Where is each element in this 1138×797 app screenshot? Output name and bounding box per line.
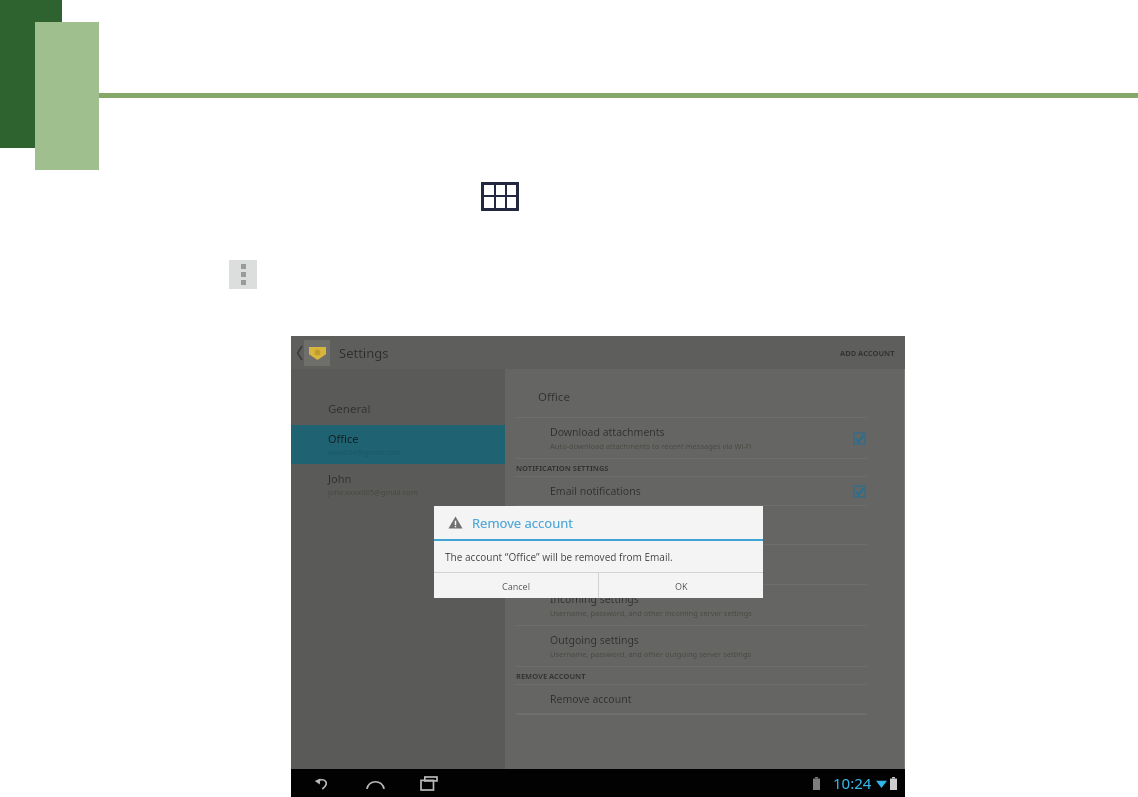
staticText: REMOVE ACCOUNT [516, 671, 586, 681]
button[interactable]: General [291, 396, 505, 425]
staticText: General [328, 401, 371, 417]
button[interactable]: Home [361, 774, 390, 793]
staticText: Office [328, 431, 359, 446]
button[interactable]: Recent apps [415, 773, 443, 794]
button[interactable]: Remove account [505, 685, 905, 713]
staticText: joha.xxxx005@gmail.com [328, 487, 418, 497]
staticText: Auto-download attachments to recent mess… [550, 441, 752, 451]
button[interactable]: Cancel [434, 573, 598, 598]
staticText: Remove account [550, 692, 632, 706]
button[interactable]: ADD ACCOUNT [830, 348, 905, 358]
staticText: Email notifications [550, 484, 641, 498]
staticText: Username, password, and other outgoing s… [550, 649, 752, 659]
staticText: 10:24 [833, 773, 872, 793]
staticText: Username, password, and other incoming s… [550, 608, 752, 618]
staticText: Download attachments [550, 425, 665, 439]
button[interactable]: OK [599, 573, 763, 598]
button[interactable]: Apps [481, 182, 519, 211]
staticText: OK [675, 580, 688, 592]
staticText: SERVER SETTINGS [516, 571, 581, 581]
button[interactable]: Office [291, 425, 505, 464]
staticText: Outgoing settings [550, 633, 639, 647]
staticText: The account “Office” will be removed fro… [445, 550, 673, 564]
button[interactable]: Outgoing settings [505, 626, 905, 666]
button[interactable]: Download attachments [505, 418, 905, 458]
staticText: Office [538, 389, 570, 405]
staticText: NOTIFICATION SETTINGS [516, 463, 609, 473]
staticText: Cancel [502, 580, 531, 592]
staticText: John [328, 471, 352, 486]
button[interactable]: Back [308, 773, 336, 794]
button[interactable]: Email notifications [505, 477, 905, 505]
button[interactable]: More options [229, 260, 257, 289]
staticText: Incoming settings [550, 592, 639, 606]
button[interactable]: John [291, 464, 505, 504]
staticText: ADD ACCOUNT [840, 348, 895, 358]
staticText: Settings [339, 344, 389, 362]
button[interactable]: Incoming settings [505, 585, 905, 625]
staticText: Remove account [472, 514, 573, 532]
